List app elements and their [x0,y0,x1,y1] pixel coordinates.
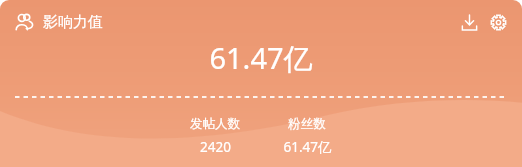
staticText: 61.47亿 [209,38,313,78]
staticText: 发帖人数 [190,116,240,132]
staticText: 粉丝数 [288,116,326,132]
staticText: 61.47亿 [283,138,332,156]
button[interactable]: 影响力值 [12,9,105,35]
staticText: 影响力值 [43,13,103,32]
button[interactable]: Download [455,8,483,36]
button[interactable]: 发帖人数 [172,116,258,156]
staticText: 2420 [200,138,231,156]
button[interactable]: 粉丝数 [264,116,350,156]
button[interactable]: Settings [484,8,512,36]
